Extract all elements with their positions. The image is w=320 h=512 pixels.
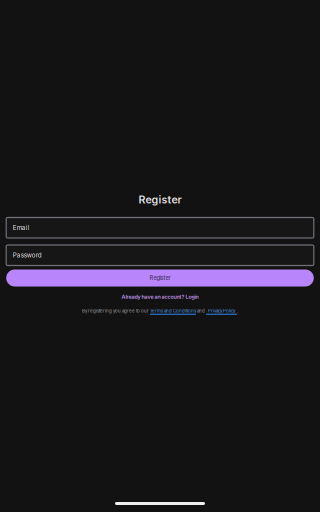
staticText: Password [13, 251, 42, 259]
staticText: Register [149, 275, 170, 281]
staticText: Email [13, 224, 30, 232]
staticText: and [196, 308, 206, 314]
staticText: Terms and Conditions [150, 308, 196, 314]
staticText: Already have an account? Login [121, 293, 198, 300]
staticText: . [237, 308, 238, 314]
button[interactable]: Terms and Conditions [150, 308, 196, 315]
button[interactable]: Email [6, 217, 314, 238]
staticText: Register [138, 193, 181, 206]
staticText: By registering you agree to our [82, 308, 150, 314]
button[interactable]: Privacy Policy [206, 308, 237, 315]
button[interactable]: Register [6, 269, 314, 286]
button[interactable]: Password [6, 245, 314, 265]
staticText: Privacy Policy [208, 308, 235, 314]
button[interactable]: Already have an account? Login [121, 293, 198, 300]
